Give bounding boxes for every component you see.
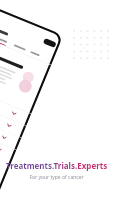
staticText: For your type of cancer (29, 174, 84, 181)
staticText: Treatments.Trials.Experts (6, 160, 108, 171)
